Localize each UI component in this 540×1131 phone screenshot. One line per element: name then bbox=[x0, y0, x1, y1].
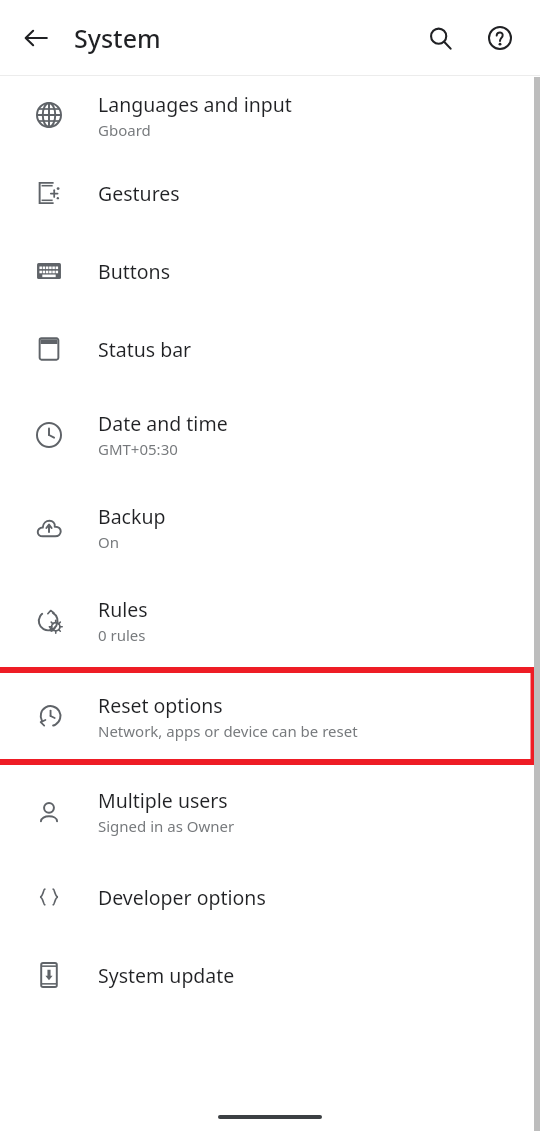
button[interactable]: Date and time bbox=[0, 388, 540, 481]
staticText: Backup bbox=[98, 503, 166, 530]
staticText: Status bar bbox=[98, 336, 192, 363]
staticText: System update bbox=[98, 962, 235, 989]
staticText: Buttons bbox=[98, 258, 170, 285]
button[interactable]: Back bbox=[8, 10, 64, 66]
button[interactable]: Status bar bbox=[0, 310, 540, 388]
staticText: GMT+05:30 bbox=[98, 439, 178, 459]
button[interactable]: Help bbox=[474, 12, 526, 64]
staticText: Signed in as Owner bbox=[98, 816, 235, 836]
button[interactable]: Multiple users bbox=[0, 765, 540, 858]
staticText: Rules bbox=[98, 596, 148, 623]
staticText: Date and time bbox=[98, 410, 228, 437]
staticText: Developer options bbox=[98, 884, 266, 911]
staticText: Languages and input bbox=[98, 91, 292, 118]
button[interactable]: Gestures bbox=[0, 154, 540, 232]
button[interactable]: System update bbox=[0, 936, 540, 1014]
staticText: Network, apps or device can be reset bbox=[98, 721, 358, 741]
staticText: System bbox=[74, 21, 161, 55]
button[interactable]: Rules bbox=[0, 574, 540, 667]
button[interactable]: Developer options bbox=[0, 858, 540, 936]
staticText: Gboard bbox=[98, 120, 151, 140]
staticText: Reset options bbox=[98, 692, 223, 719]
button[interactable]: Backup bbox=[0, 481, 540, 574]
staticText: Gestures bbox=[98, 180, 180, 207]
button[interactable]: Buttons bbox=[0, 232, 540, 310]
button[interactable]: Languages and input bbox=[0, 76, 540, 154]
button[interactable]: Reset options bbox=[0, 667, 540, 765]
staticText: 0 rules bbox=[98, 625, 146, 645]
button[interactable]: Search bbox=[414, 12, 466, 64]
staticText: On bbox=[98, 532, 119, 552]
staticText: Multiple users bbox=[98, 787, 228, 814]
